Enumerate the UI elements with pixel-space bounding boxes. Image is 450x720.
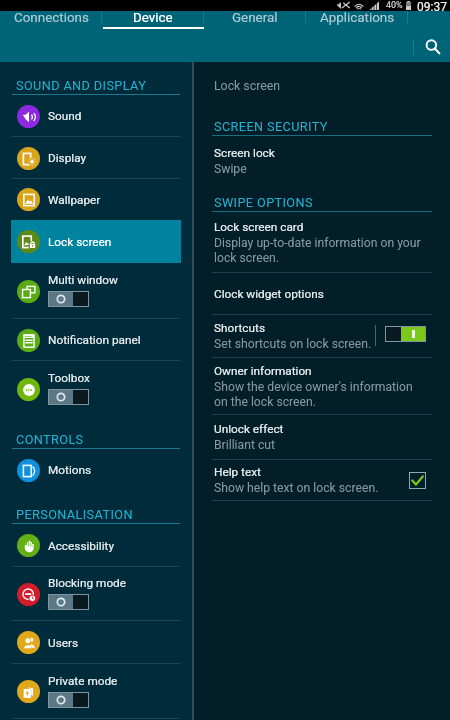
button[interactable]: Lock screen [11,220,181,263]
staticText: Swipe [214,162,247,176]
staticText: SWIPE OPTIONS [214,195,313,210]
staticText: Lock screen card [214,220,304,234]
button[interactable]: Lock screen card [194,212,450,272]
staticText: Accessibility [48,539,115,553]
staticText: Owner information [214,364,312,378]
button[interactable]: Motions [0,449,192,491]
button[interactable]: Owner information [194,358,450,414]
staticText: 09:37 [417,0,447,11]
staticText: Display [48,151,87,165]
staticText: Screen lock [214,146,275,160]
button[interactable]: Switch on [386,327,425,341]
staticText: Applications [320,10,395,26]
staticText: Brilliant cut [214,438,276,452]
staticText: Set shortcuts on lock screen. [214,337,372,351]
staticText: Lock screen [48,235,112,249]
button[interactable]: Toolbox [0,361,192,417]
staticText: Private mode [48,674,118,688]
button[interactable]: Device [102,0,204,31]
staticText: Users [48,636,79,650]
button[interactable]: Search [418,32,448,62]
staticText: Blocking mode [48,576,127,590]
staticText: Clock widget options [214,287,324,301]
staticText: SOUND AND DISPLAY [16,78,147,93]
button[interactable]: Blocking mode [0,567,192,621]
staticText: Lock screen [214,79,281,93]
staticText: Unlock effect [214,422,284,436]
staticText: 40% [386,0,403,11]
staticText: Display up-to-date information on your l… [214,236,421,265]
button[interactable]: Applications [306,0,408,31]
button[interactable]: Shortcuts [194,315,450,357]
button[interactable]: Users [0,621,192,664]
button[interactable]: Private mode [0,664,192,719]
button[interactable]: Unlock effect [194,415,450,459]
staticText: Device [133,10,173,26]
button[interactable]: Sound [0,95,192,137]
button[interactable]: Accessibility [0,524,192,567]
button[interactable]: General [204,0,306,31]
button[interactable]: Switch off [49,595,88,609]
button[interactable]: Switch off [49,390,88,404]
staticText: Show the device owner's information on t… [214,380,413,409]
staticText: Notification panel [48,333,141,347]
button[interactable]: Screen lock [194,136,450,186]
button[interactable]: Wallpaper [0,179,192,220]
button[interactable]: Clock widget options [194,273,450,314]
button[interactable]: Display [0,137,192,179]
staticText: Connections [14,10,89,26]
staticText: Toolbox [48,371,90,385]
staticText: Motions [48,463,92,477]
staticText: Multi window [48,273,118,287]
button[interactable]: Multi window [0,263,192,319]
button[interactable]: Switch off [49,292,88,306]
button[interactable]: Switch off [49,693,88,707]
staticText: Wallpaper [48,193,101,207]
staticText: Sound [48,109,82,123]
staticText: Show help text on lock screen. [214,481,379,495]
button[interactable]: Connections [0,0,102,31]
button[interactable]: Notification panel [0,319,192,361]
button[interactable]: Help text checkbox [409,472,426,489]
staticText: Shortcuts [214,321,266,335]
staticText: Help text [214,465,261,479]
staticText: General [232,10,278,26]
staticText: SCREEN SECURITY [214,119,328,134]
button[interactable]: Help text [194,460,450,500]
staticText: CONTROLS [16,432,84,447]
staticText: PERSONALISATION [16,507,133,522]
